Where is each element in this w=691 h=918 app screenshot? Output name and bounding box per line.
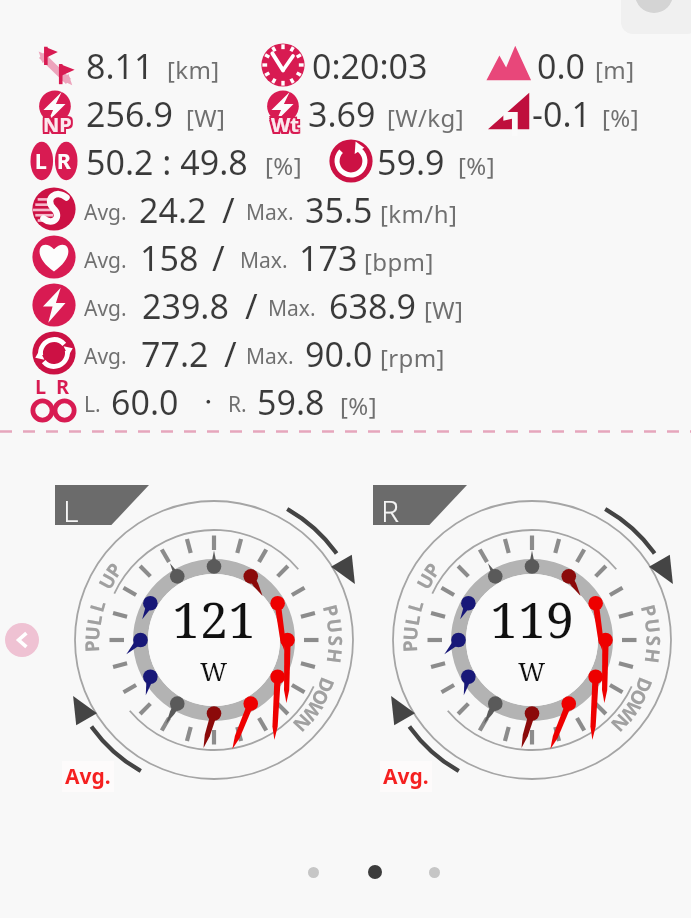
staticText: Wt — [269, 113, 298, 140]
staticText: N — [287, 708, 317, 738]
staticText: P — [79, 639, 105, 653]
staticText: Wt — [273, 113, 302, 140]
staticText: L — [35, 373, 47, 400]
button[interactable]: Right pedal — [373, 485, 467, 525]
staticText: NP — [45, 111, 74, 138]
staticText: [%] — [458, 149, 495, 182]
staticText: P — [418, 558, 446, 582]
staticText: O — [623, 685, 653, 711]
staticText: O — [305, 685, 335, 711]
staticText: [m] — [595, 53, 635, 86]
staticText: 173 — [299, 235, 358, 281]
staticText: Max. — [268, 294, 316, 323]
button[interactable]: Next — [621, 0, 691, 34]
staticText: / — [212, 235, 225, 281]
staticText: 35.5 — [305, 187, 373, 233]
staticText: 121 — [172, 585, 256, 653]
staticText: NP — [41, 109, 70, 136]
staticText: R — [57, 147, 71, 176]
staticText: Avg. — [84, 342, 127, 371]
staticText: -0.1 — [532, 91, 591, 137]
staticText: / — [245, 283, 258, 329]
staticText: [W/kg] — [387, 101, 465, 134]
staticText: H — [321, 647, 348, 665]
staticText: [%] — [602, 101, 639, 134]
staticText: NP — [43, 111, 72, 138]
staticText: Wt — [273, 111, 302, 138]
staticText: 0:20:03 — [312, 43, 428, 89]
staticText: NP — [41, 111, 70, 138]
staticText: 239.8 — [142, 283, 229, 329]
staticText: R — [56, 373, 70, 400]
staticText: Wt — [269, 109, 298, 136]
staticText: U — [410, 568, 440, 594]
staticText: D — [311, 674, 341, 696]
staticText: P — [100, 558, 128, 582]
staticText: U — [639, 617, 666, 635]
staticText: [%] — [340, 389, 377, 422]
staticText: 638.9 — [329, 283, 416, 329]
staticText: Avg. — [84, 246, 127, 275]
staticText: Avg. — [65, 762, 111, 791]
staticText: Max. — [246, 342, 294, 371]
staticText: P — [317, 602, 345, 620]
staticText: 90.0 — [305, 331, 373, 377]
staticText: 256.9 — [86, 91, 173, 137]
staticText: Max. — [240, 246, 288, 275]
staticText: N — [605, 708, 635, 738]
staticText: L — [399, 612, 426, 628]
staticText: [W] — [186, 101, 226, 134]
staticText: W — [200, 653, 228, 688]
staticText: L — [401, 597, 429, 615]
staticText: H — [639, 647, 666, 665]
staticText: ・ — [196, 387, 220, 417]
staticText: W — [296, 696, 329, 726]
staticText: NP — [43, 113, 72, 140]
staticText: S — [640, 635, 666, 646]
staticText: P — [397, 639, 423, 653]
staticText: NP — [45, 109, 74, 136]
staticText: L — [35, 147, 47, 176]
button[interactable]: Previous page — [5, 623, 39, 657]
staticText: 59.8 — [257, 379, 325, 425]
staticText: L — [83, 597, 111, 615]
staticText: D — [629, 674, 659, 696]
staticText: Wt — [271, 113, 300, 140]
staticText: 119 — [490, 585, 574, 653]
staticText: [rpm] — [380, 341, 445, 374]
staticText: P — [635, 602, 663, 620]
staticText: [km] — [167, 53, 220, 86]
staticText: U — [79, 625, 106, 641]
staticText: [%] — [265, 149, 302, 182]
staticText: L. — [84, 390, 101, 419]
staticText: U — [321, 617, 348, 635]
staticText: U — [92, 568, 122, 594]
staticText: 158 — [140, 235, 199, 281]
staticText: [W] — [424, 293, 464, 326]
staticText: 0.0 — [537, 43, 586, 89]
staticText: 77.2 — [141, 331, 209, 377]
staticText: Wt — [269, 111, 298, 138]
staticText: 50.2 : 49.8 — [86, 139, 248, 185]
staticText: Avg. — [84, 198, 127, 227]
staticText: S — [322, 635, 348, 646]
staticText: Avg. — [383, 762, 429, 791]
staticText: 8.11 — [86, 43, 154, 89]
staticText: Wt — [273, 109, 302, 136]
staticText: Avg. — [84, 294, 127, 323]
staticText: [km/h] — [380, 197, 458, 230]
staticText: W — [614, 696, 647, 726]
staticText: 24.2 — [139, 187, 207, 233]
staticText: L — [63, 490, 79, 530]
staticText: W — [518, 653, 546, 688]
staticText: NP — [43, 109, 72, 136]
staticText: NP — [41, 113, 70, 140]
staticText: Max. — [246, 198, 294, 227]
staticText: [bpm] — [364, 245, 434, 278]
button[interactable]: Left pedal — [55, 485, 149, 525]
staticText: NP — [45, 113, 74, 140]
staticText: 59.9 — [377, 139, 445, 185]
staticText: / — [222, 187, 235, 233]
staticText: R — [381, 490, 399, 530]
staticText: / — [224, 331, 237, 377]
